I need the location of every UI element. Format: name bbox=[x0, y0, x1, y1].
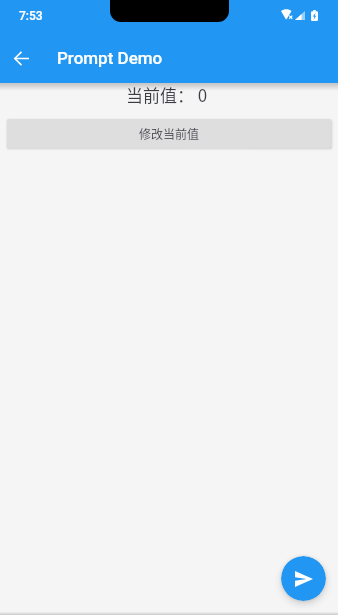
staticText: 修改当前值 bbox=[139, 125, 200, 142]
staticText: Prompt Demo bbox=[57, 48, 163, 68]
staticText: 当前值： 0 bbox=[126, 82, 208, 107]
button[interactable]: Navigate back bbox=[5, 42, 37, 74]
button[interactable]: 修改当前值 bbox=[7, 119, 331, 148]
staticText: 7:53 bbox=[19, 9, 43, 23]
button[interactable]: Send bbox=[281, 556, 326, 601]
